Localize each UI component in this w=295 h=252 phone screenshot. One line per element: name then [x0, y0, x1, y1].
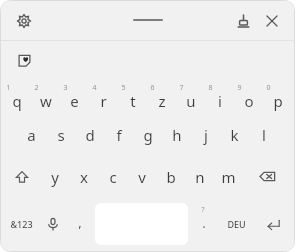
staticText: 6 — [150, 83, 155, 93]
staticText: z — [158, 91, 166, 111]
button[interactable]: d — [75, 115, 104, 155]
button[interactable]: Backspace — [243, 155, 292, 198]
button[interactable]: m — [214, 155, 243, 198]
staticText: y — [51, 167, 59, 187]
button[interactable]: DEU — [218, 198, 255, 250]
button[interactable]: , — [66, 198, 93, 250]
button[interactable]: v — [127, 155, 156, 198]
button[interactable]: g — [133, 115, 162, 155]
staticText: 1 — [6, 83, 11, 93]
button[interactable]: 0 — [263, 79, 292, 115]
staticText: c — [109, 167, 117, 187]
staticText: o — [244, 91, 254, 111]
button[interactable]: 8 — [205, 79, 234, 115]
staticText: s — [57, 125, 65, 145]
button[interactable]: c — [98, 155, 127, 198]
button[interactable]: s — [46, 115, 75, 155]
staticText: f — [116, 125, 122, 145]
staticText: 9 — [237, 83, 242, 93]
staticText: d — [85, 125, 95, 145]
button[interactable]: ? — [190, 198, 218, 250]
staticText: 2 — [34, 83, 39, 93]
button[interactable]: Enter — [255, 198, 292, 250]
button[interactable]: Stickers — [11, 47, 37, 73]
staticText: i — [218, 91, 222, 111]
staticText: DEU — [227, 218, 246, 230]
staticText: q — [12, 91, 22, 111]
staticText: , — [78, 213, 82, 231]
button[interactable]: k — [220, 115, 249, 155]
staticText: ? — [201, 205, 205, 215]
button[interactable]: Shift — [3, 155, 40, 198]
button[interactable]: 1 — [3, 79, 31, 115]
staticText: . — [202, 214, 206, 232]
button[interactable]: f — [104, 115, 133, 155]
button[interactable]: x — [69, 155, 98, 198]
staticText: n — [195, 167, 205, 187]
button[interactable]: 4 — [89, 79, 118, 115]
button[interactable]: a — [17, 115, 46, 155]
button[interactable]: Voice input — [39, 198, 66, 250]
staticText: 0 — [266, 83, 271, 93]
button[interactable]: y — [40, 155, 69, 198]
button[interactable]: &123 — [3, 198, 39, 250]
staticText: h — [172, 125, 182, 145]
button[interactable]: Drag handle — [131, 15, 165, 25]
button[interactable]: Dock keyboard — [230, 8, 256, 34]
staticText: p — [273, 91, 283, 111]
staticText: j — [204, 125, 208, 145]
button[interactable]: h — [162, 115, 191, 155]
button[interactable]: Settings — [11, 8, 37, 34]
staticText: t — [130, 91, 136, 111]
button[interactable]: 5 — [118, 79, 147, 115]
staticText: v — [138, 167, 146, 187]
staticText: m — [221, 167, 236, 187]
staticText: r — [100, 91, 107, 111]
staticText: l — [262, 125, 266, 145]
staticText: u — [186, 91, 196, 111]
button[interactable]: b — [156, 155, 185, 198]
staticText: x — [80, 167, 88, 187]
button[interactable]: Close — [259, 8, 285, 34]
staticText: k — [230, 125, 239, 145]
button[interactable]: 2 — [31, 79, 60, 115]
button[interactable]: 3 — [60, 79, 89, 115]
button[interactable]: n — [185, 155, 214, 198]
staticText: a — [27, 125, 36, 145]
staticText: 7 — [179, 83, 184, 93]
staticText: g — [143, 125, 153, 145]
button[interactable]: j — [191, 115, 220, 155]
staticText: w — [40, 91, 52, 111]
button[interactable]: 7 — [176, 79, 205, 115]
staticText: &123 — [10, 218, 33, 230]
button[interactable]: 9 — [234, 79, 263, 115]
staticText: 5 — [121, 83, 126, 93]
staticText: b — [166, 167, 176, 187]
button[interactable]: 6 — [147, 79, 176, 115]
staticText: e — [70, 91, 79, 111]
staticText: 8 — [208, 83, 213, 93]
staticText: 3 — [63, 83, 68, 93]
button[interactable]: l — [249, 115, 278, 155]
staticText: 4 — [92, 83, 97, 93]
